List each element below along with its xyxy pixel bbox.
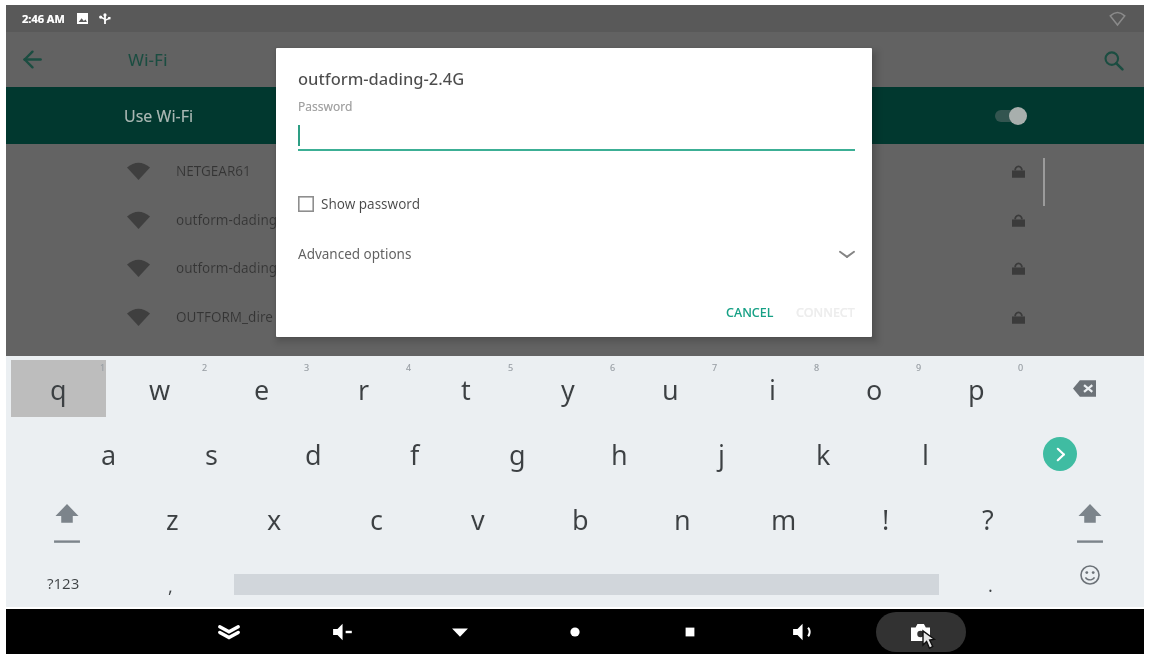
button[interactable]: z [121, 486, 223, 551]
button[interactable]: Volume up [781, 610, 825, 654]
staticText: c [370, 501, 383, 538]
staticText: , [168, 574, 173, 599]
staticText: 2 [202, 361, 208, 373]
staticText: m [771, 501, 797, 538]
staticText: 6 [610, 361, 616, 373]
staticText: OUTFORM_dire [176, 308, 273, 326]
staticText: 0 [1018, 361, 1024, 373]
staticText: j [718, 436, 725, 473]
button[interactable]: n [631, 486, 733, 551]
staticText: CONNECT [796, 304, 855, 321]
button[interactable]: l [874, 421, 976, 486]
staticText: 5 [508, 361, 514, 373]
staticText: 9 [916, 361, 922, 373]
staticText: i [769, 371, 776, 408]
button[interactable]: Back [438, 610, 482, 654]
button[interactable]: Hide keyboard [207, 610, 251, 654]
button[interactable]: CANCEL [715, 296, 785, 328]
staticText: v [471, 501, 485, 538]
button[interactable]: , [119, 551, 221, 609]
button[interactable]: . [939, 551, 1041, 609]
staticText: p [968, 371, 985, 408]
staticText: ! [882, 501, 890, 538]
staticText: NETGEAR61 [176, 162, 251, 180]
button[interactable]: q [7, 356, 109, 421]
staticText: Show password [321, 195, 420, 213]
button[interactable]: Space [221, 551, 941, 609]
button[interactable]: ? [937, 486, 1039, 551]
staticText: k [816, 436, 831, 473]
staticText: CANCEL [726, 304, 774, 321]
button[interactable]: outform-dading [6, 244, 1144, 292]
button[interactable]: d [262, 421, 364, 486]
staticText: 1 [100, 361, 106, 373]
staticText: ? [982, 501, 994, 538]
button[interactable]: b [529, 486, 631, 551]
button[interactable]: o [823, 356, 925, 421]
staticText: outform-dading-2.4G [298, 67, 465, 89]
button[interactable]: ! [835, 486, 937, 551]
button[interactable]: CONNECT [785, 296, 865, 328]
button[interactable]: Volume down [321, 610, 365, 654]
button[interactable]: x [223, 486, 325, 551]
button[interactable]: p [925, 356, 1027, 421]
button[interactable]: t [415, 356, 517, 421]
staticText: b [572, 501, 589, 538]
button[interactable]: Shift [1039, 486, 1141, 551]
button[interactable]: g [466, 421, 568, 486]
staticText: z [166, 501, 179, 538]
button[interactable]: Use Wi-Fi toggle [989, 103, 1035, 129]
staticText: 4 [406, 361, 412, 373]
button[interactable]: e [211, 356, 313, 421]
button[interactable]: a [58, 421, 160, 486]
button[interactable]: c [325, 486, 427, 551]
button[interactable]: Shift [16, 486, 118, 551]
staticText: x [267, 501, 282, 538]
staticText: o [866, 371, 883, 408]
button[interactable]: Enter [1012, 421, 1108, 486]
button[interactable]: Advanced options [276, 238, 872, 270]
button[interactable]: m [733, 486, 835, 551]
staticText: 3 [304, 361, 310, 373]
button[interactable]: r [313, 356, 415, 421]
button[interactable]: Show password [298, 192, 420, 216]
button[interactable]: j [670, 421, 772, 486]
staticText: outform-dading [176, 259, 278, 277]
button[interactable]: y [517, 356, 619, 421]
button[interactable]: Screenshot [876, 612, 966, 652]
button[interactable]: ?123 [12, 551, 114, 609]
button[interactable]: i [721, 356, 823, 421]
button[interactable]: Home [553, 610, 597, 654]
staticText: Use Wi-Fi [124, 105, 194, 127]
staticText: Wi-Fi [128, 48, 168, 71]
button[interactable]: Backspace [1036, 356, 1132, 421]
button[interactable]: Recents [668, 610, 712, 654]
staticText: d [305, 436, 322, 473]
staticText: Password [298, 98, 353, 114]
staticText: t [461, 371, 471, 408]
button[interactable]: f [364, 421, 466, 486]
button[interactable]: Navigate up [8, 35, 56, 83]
button[interactable]: Search [1089, 36, 1137, 84]
button[interactable]: OUTFORM_dire [6, 293, 1144, 341]
staticText: f [410, 436, 420, 473]
staticText: e [254, 371, 270, 408]
staticText: h [611, 436, 628, 473]
staticText: outform-dading [176, 211, 278, 229]
button[interactable]: Emoji [1039, 551, 1141, 609]
staticText: u [662, 371, 679, 408]
button[interactable]: NETGEAR61 [6, 147, 1144, 195]
staticText: ?123 [47, 573, 80, 593]
staticText: y [561, 371, 575, 408]
staticText: 8 [814, 361, 820, 373]
staticText: g [509, 436, 526, 473]
button[interactable]: outform-dading [6, 196, 1144, 244]
staticText: s [205, 436, 218, 473]
button[interactable]: v [427, 486, 529, 551]
button[interactable]: w [109, 356, 211, 421]
button[interactable]: s [160, 421, 262, 486]
button[interactable]: k [772, 421, 874, 486]
button[interactable]: h [568, 421, 670, 486]
staticText: q [50, 371, 67, 408]
button[interactable]: u [619, 356, 721, 421]
